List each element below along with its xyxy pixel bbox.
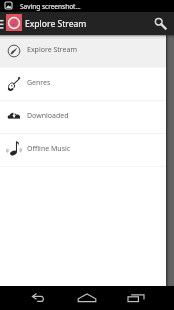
button[interactable]: Offline Music [0, 134, 166, 166]
staticText: Explore Stream [25, 18, 87, 30]
staticText: Saving screenshot… [20, 2, 81, 11]
staticText: Explore Stream [27, 45, 78, 55]
button[interactable]: Back [19, 286, 57, 310]
button[interactable]: Open navigation drawer [0, 12, 6, 35]
staticText: Downloaded [27, 111, 69, 121]
button[interactable]: Search [149, 13, 171, 35]
button[interactable]: Downloaded [0, 101, 166, 133]
button[interactable]: Explore Stream [0, 35, 166, 67]
button[interactable]: Genres [0, 68, 166, 100]
staticText: Offline Music [27, 144, 71, 154]
staticText: Genres [27, 78, 51, 88]
button[interactable]: Recents [117, 286, 155, 310]
button[interactable]: Home [68, 286, 106, 310]
